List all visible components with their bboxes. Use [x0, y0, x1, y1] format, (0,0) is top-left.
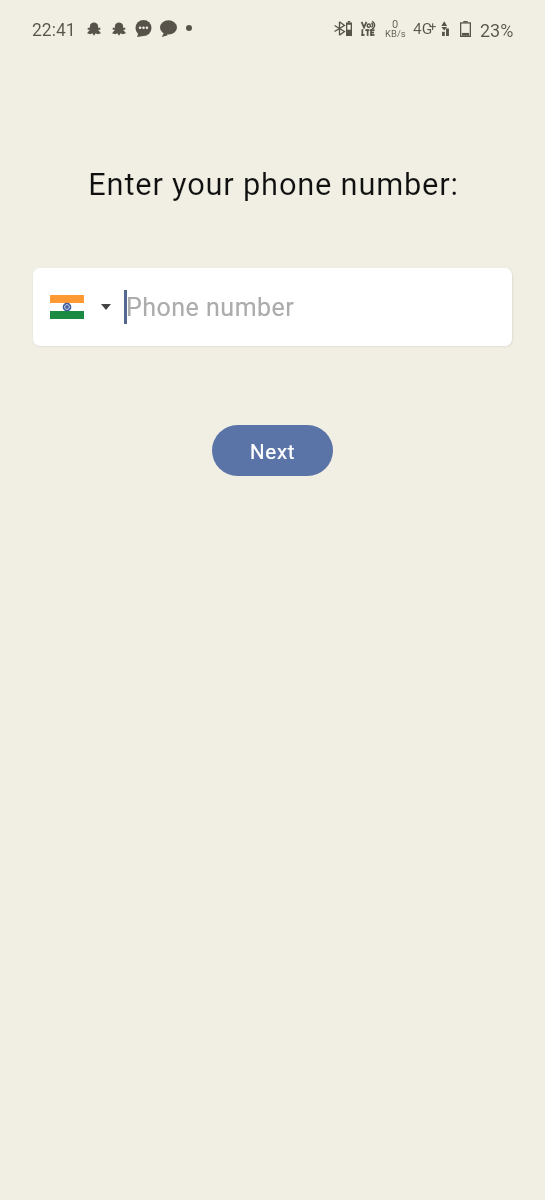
- button[interactable]: Next: [212, 425, 333, 476]
- staticText: Next: [250, 440, 296, 464]
- staticText: Enter your phone number:: [1, 166, 545, 202]
- button[interactable]: Phone number: [124, 268, 512, 346]
- staticText: Phone number: [126, 293, 295, 322]
- staticText: 23%: [480, 20, 514, 41]
- staticText: 0: [392, 18, 399, 31]
- staticText: KB/s: [385, 28, 406, 39]
- staticText: +: [429, 19, 437, 34]
- staticText: 4G: [413, 20, 433, 38]
- staticText: 22:41: [32, 20, 76, 41]
- button[interactable]: Select country code: [33, 268, 124, 346]
